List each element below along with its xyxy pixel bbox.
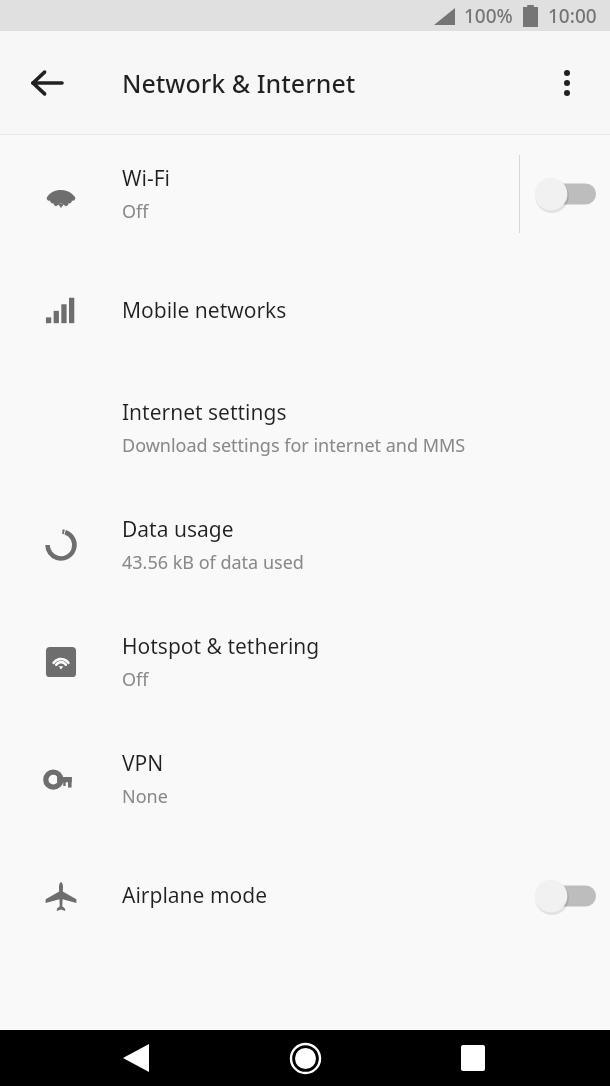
button[interactable]: Wi-Fi [0,135,610,252]
button[interactable]: More options [545,61,589,105]
button[interactable]: Airplane mode [0,837,610,954]
button[interactable]: VPN [0,720,610,837]
staticText: 100% [464,3,513,29]
staticText: Network & Internet [122,66,356,100]
staticText: 43.56 kB of data used [122,550,304,575]
staticText: Hotspot & tethering [122,632,320,661]
staticText: Download settings for internet and MMS [122,433,466,458]
staticText: Airplane mode [122,881,268,910]
staticText: Mobile networks [122,296,287,325]
staticText: None [122,784,168,809]
button[interactable]: Recent apps [443,1030,503,1086]
staticText: Off [122,667,149,692]
button[interactable]: Data usage [0,486,610,603]
button[interactable]: Wi-Fi toggle [520,158,610,230]
staticText: 10:00 [548,3,597,29]
staticText: Internet settings [122,398,287,427]
button[interactable]: Back [23,59,71,107]
button[interactable]: Airplane mode toggle [520,860,610,932]
button[interactable]: Mobile networks [0,252,610,369]
staticText: VPN [122,749,164,778]
staticText: Wi-Fi [122,164,171,193]
button[interactable]: Hotspot & tethering [0,603,610,720]
button[interactable]: Internet settings [0,369,610,486]
staticText: Data usage [122,515,234,544]
button[interactable]: Home [275,1030,335,1086]
button[interactable]: Back [106,1030,166,1086]
staticText: Off [122,199,149,224]
